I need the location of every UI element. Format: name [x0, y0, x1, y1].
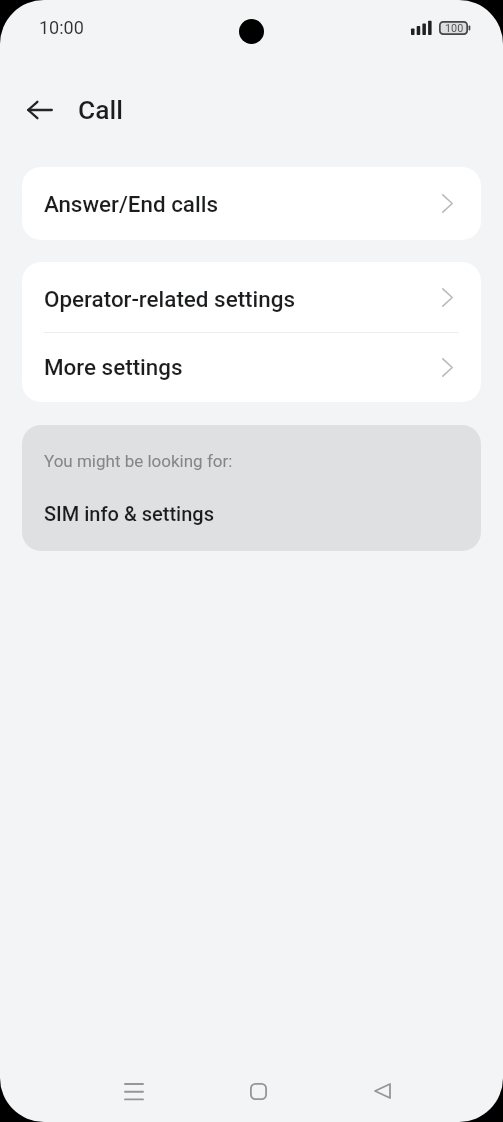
- staticText: More settings: [44, 354, 183, 380]
- button[interactable]: Back: [20, 90, 60, 130]
- button[interactable]: Recents: [110, 1067, 158, 1115]
- staticText: SIM info & settings: [44, 502, 214, 525]
- staticText: Operator-related settings: [44, 286, 296, 312]
- staticText: Call: [78, 95, 123, 126]
- staticText: 100: [445, 22, 464, 35]
- button[interactable]: Operator-related settings: [22, 262, 481, 332]
- button[interactable]: Back: [358, 1067, 406, 1115]
- button[interactable]: Home: [234, 1067, 282, 1115]
- button[interactable]: More settings: [22, 333, 481, 402]
- staticText: Answer/End calls: [44, 191, 219, 217]
- staticText: 10:00: [39, 17, 84, 38]
- button[interactable]: You might be looking for:: [22, 425, 481, 551]
- button[interactable]: Answer/End calls: [22, 167, 481, 240]
- staticText: You might be looking for:: [44, 451, 233, 471]
